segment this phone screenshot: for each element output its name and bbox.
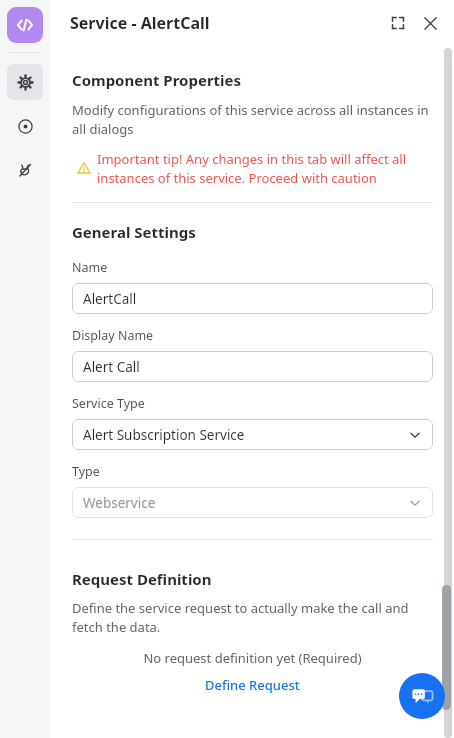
staticText: AlertCall bbox=[83, 290, 137, 308]
button[interactable]: AlertCall bbox=[72, 283, 433, 314]
staticText: Alert Subscription Service bbox=[83, 426, 245, 444]
staticText: Component Properties bbox=[72, 70, 242, 90]
button[interactable]: Status bbox=[7, 108, 43, 144]
button[interactable]: Open chat support bbox=[399, 673, 445, 719]
button[interactable]: Alert Call bbox=[72, 351, 433, 382]
staticText: Webservice bbox=[83, 494, 156, 512]
staticText: General Settings bbox=[72, 222, 196, 242]
button[interactable]: Webservice bbox=[72, 487, 433, 518]
staticText: Important tip! Any changes in this tab w… bbox=[97, 150, 433, 187]
button[interactable]: Connections bbox=[7, 152, 43, 188]
staticText: Define Request bbox=[205, 676, 300, 694]
staticText: Modify configurations of this service ac… bbox=[72, 101, 433, 138]
staticText: Define the service request to actually m… bbox=[72, 599, 433, 636]
staticText: Service Type bbox=[72, 395, 145, 412]
button[interactable]: Collapse bbox=[382, 7, 414, 39]
button[interactable]: Alert Subscription Service bbox=[72, 419, 433, 450]
staticText: Name bbox=[72, 259, 108, 276]
staticText: No request definition yet (Required) bbox=[72, 649, 433, 667]
button[interactable]: Settings bbox=[7, 64, 43, 100]
staticText: Type bbox=[72, 463, 100, 480]
button[interactable]: Code editor bbox=[7, 7, 43, 43]
button[interactable]: Close bbox=[414, 7, 446, 39]
staticText: Request Definition bbox=[72, 569, 212, 589]
button[interactable]: Define Request bbox=[72, 676, 433, 694]
staticText: Service - AlertCall bbox=[70, 12, 210, 34]
staticText: Alert Call bbox=[83, 358, 140, 376]
staticText: Display Name bbox=[72, 327, 154, 344]
